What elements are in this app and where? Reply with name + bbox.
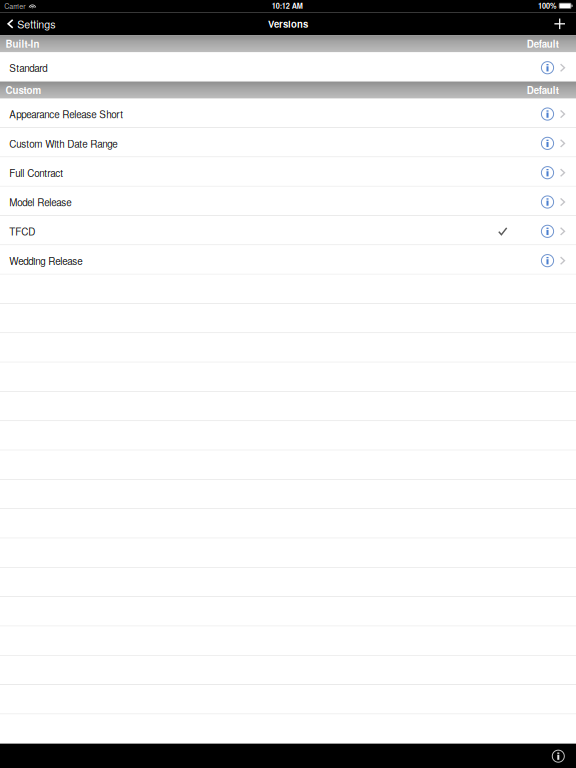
staticText: Custom (5, 83, 41, 97)
staticText: Appearance Release Short (9, 107, 123, 121)
button[interactable]: TFCD (0, 216, 576, 245)
staticText: Standard (9, 61, 47, 75)
button[interactable]: Model Release (0, 187, 576, 216)
staticText: Full Contract (9, 166, 63, 180)
staticText: Default (527, 83, 559, 97)
button[interactable]: Standard (0, 52, 576, 82)
button[interactable]: Wedding Release (0, 245, 576, 274)
staticText: Wedding Release (9, 254, 82, 268)
staticText: TFCD (9, 224, 35, 238)
staticText: Custom With Date Range (9, 136, 117, 150)
button[interactable]: Full Contract (0, 157, 576, 187)
button[interactable]: Appearance Release Short (0, 99, 576, 128)
button[interactable]: Add version (544, 12, 576, 35)
button[interactable]: Settings (0, 12, 63, 35)
staticText: Default (527, 37, 559, 51)
staticText: Carrier (4, 1, 25, 11)
staticText: Versions (268, 17, 308, 31)
staticText: Built-In (5, 37, 39, 51)
staticText: Model Release (9, 195, 71, 209)
button[interactable]: Info (543, 744, 576, 768)
staticText: Settings (17, 16, 55, 31)
staticText: 10:12 AM (272, 1, 303, 11)
staticText: 100% (538, 1, 557, 11)
button[interactable]: Custom With Date Range (0, 128, 576, 157)
